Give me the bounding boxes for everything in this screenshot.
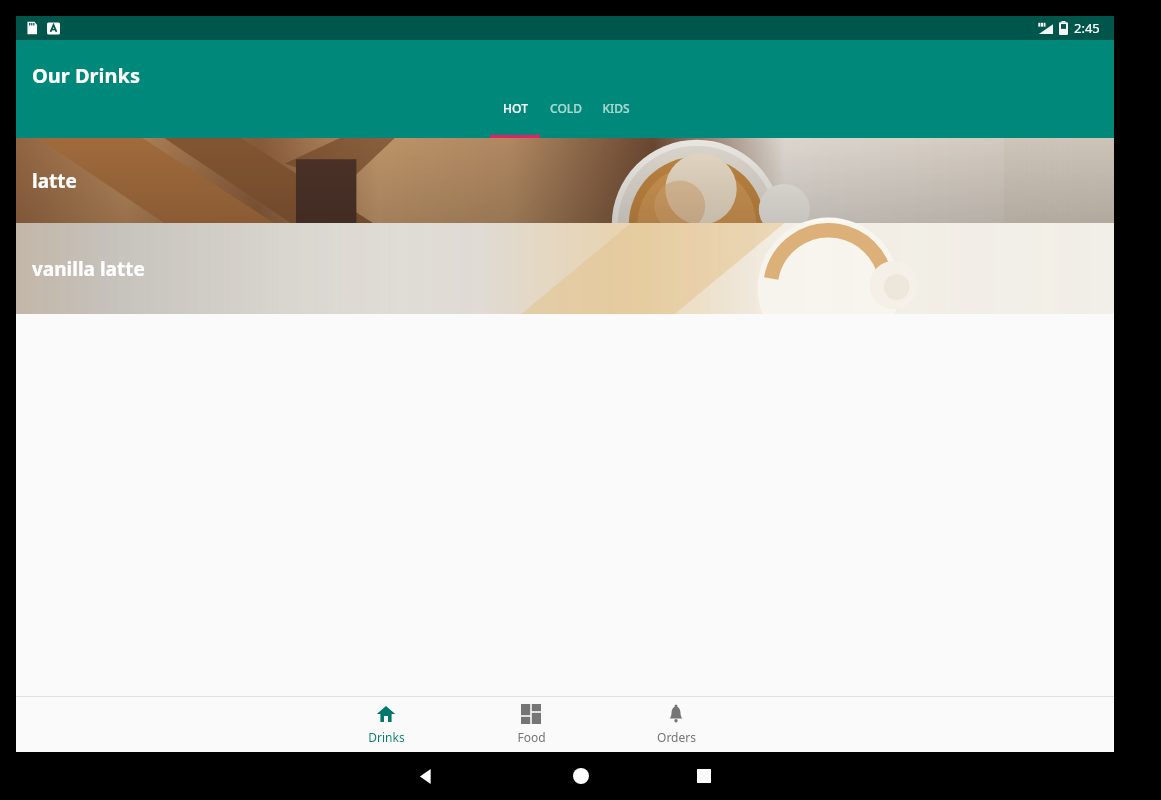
button[interactable]: Food: [491, 697, 571, 752]
button[interactable]: Back: [408, 758, 444, 794]
staticText: 2:45: [1074, 19, 1100, 37]
staticText: HOT: [503, 100, 528, 116]
staticText: COLD: [550, 100, 582, 116]
button[interactable]: latte: [16, 138, 1114, 223]
button[interactable]: Home: [563, 758, 599, 794]
button[interactable]: vanilla latte: [16, 223, 1114, 314]
staticText: latte: [32, 168, 77, 194]
staticText: Our Drinks: [32, 62, 140, 89]
button[interactable]: Recent apps: [686, 758, 722, 794]
button[interactable]: Drinks: [346, 697, 426, 752]
button[interactable]: Orders: [636, 697, 716, 752]
button[interactable]: HOT: [490, 92, 540, 138]
staticText: KIDS: [602, 100, 630, 116]
staticText: vanilla latte: [32, 256, 145, 282]
staticText: Orders: [657, 729, 696, 745]
staticText: Food: [517, 729, 546, 745]
button[interactable]: KIDS: [592, 92, 640, 138]
staticText: Drinks: [368, 729, 405, 745]
button[interactable]: COLD: [540, 92, 592, 138]
